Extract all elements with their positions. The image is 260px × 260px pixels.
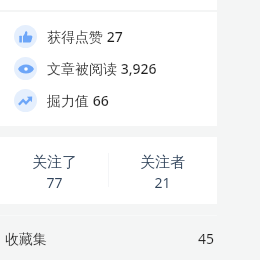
button[interactable]: 获得点赞 27 [0, 20, 217, 52]
button[interactable]: 收藏集 [0, 216, 217, 258]
staticText: 掘力值 66 [47, 91, 109, 110]
staticText: 关注了 [32, 153, 77, 172]
staticText: 文章被阅读 3,926 [47, 59, 157, 78]
staticText: 77 [46, 173, 63, 192]
staticText: 收藏集 [5, 231, 47, 249]
button[interactable]: 关注了 [0, 137, 108, 204]
staticText: 获得点赞 27 [47, 27, 123, 46]
staticText: 21 [154, 173, 171, 192]
button[interactable]: 掘力值 66 [0, 84, 217, 116]
button[interactable]: 关注者 [108, 137, 217, 204]
button[interactable]: 文章被阅读 3,926 [0, 52, 217, 84]
staticText: 45 [198, 229, 215, 248]
staticText: 关注者 [140, 153, 185, 172]
